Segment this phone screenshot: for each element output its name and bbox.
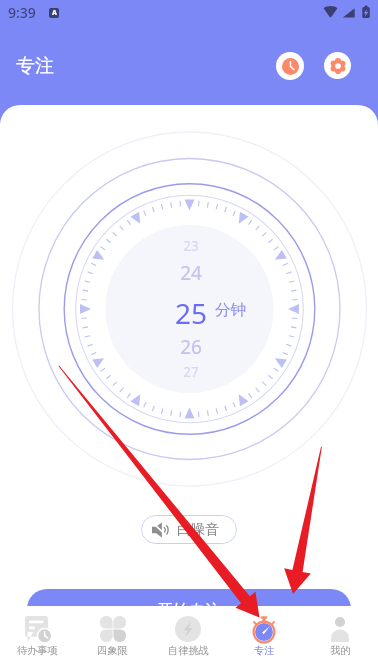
staticText: 白噪音: [177, 521, 219, 539]
staticText: 我的: [330, 644, 351, 657]
staticText: 23: [183, 237, 199, 255]
staticText: 分钟: [215, 300, 246, 320]
staticText: 开始专注: [157, 601, 221, 621]
staticText: 专注: [16, 54, 54, 78]
button[interactable]: Settings: [324, 52, 351, 79]
button[interactable]: 自律挑战: [150, 606, 226, 657]
staticText: 26: [180, 334, 202, 360]
button[interactable]: 我的: [302, 606, 378, 657]
staticText: 25: [175, 294, 208, 326]
staticText: 专注: [254, 644, 275, 657]
button[interactable]: 白噪音: [141, 515, 237, 544]
button[interactable]: History: [276, 52, 304, 80]
staticText: 四象限: [97, 644, 128, 657]
button[interactable]: 待办事项: [0, 606, 75, 657]
staticText: 9:39: [8, 3, 36, 22]
staticText: 24: [180, 260, 202, 286]
staticText: 27: [183, 363, 199, 381]
button[interactable]: 四象限: [75, 606, 150, 657]
staticText: 自律挑战: [168, 644, 209, 657]
button[interactable]: 专注: [226, 606, 302, 657]
staticText: 待办事项: [17, 644, 58, 657]
staticText: A: [52, 8, 57, 18]
button[interactable]: 开始专注: [27, 589, 351, 633]
